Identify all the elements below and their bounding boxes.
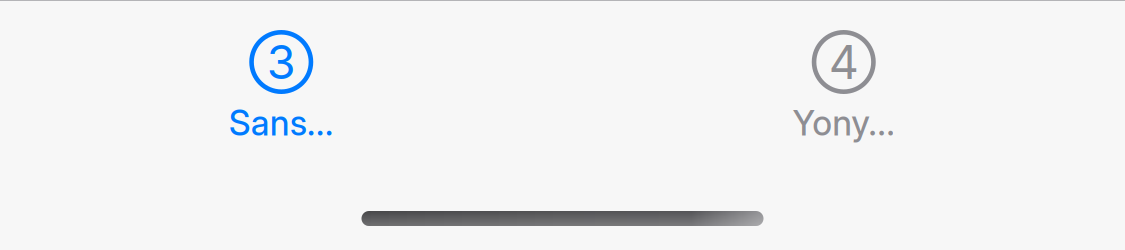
staticText: 4 [829,34,859,90]
button[interactable]: 3 [0,30,562,144]
staticText: Sans... [229,102,334,144]
staticText: 3 [267,34,296,90]
button[interactable]: 4 [562,30,1125,144]
staticText: Yony... [792,102,895,144]
